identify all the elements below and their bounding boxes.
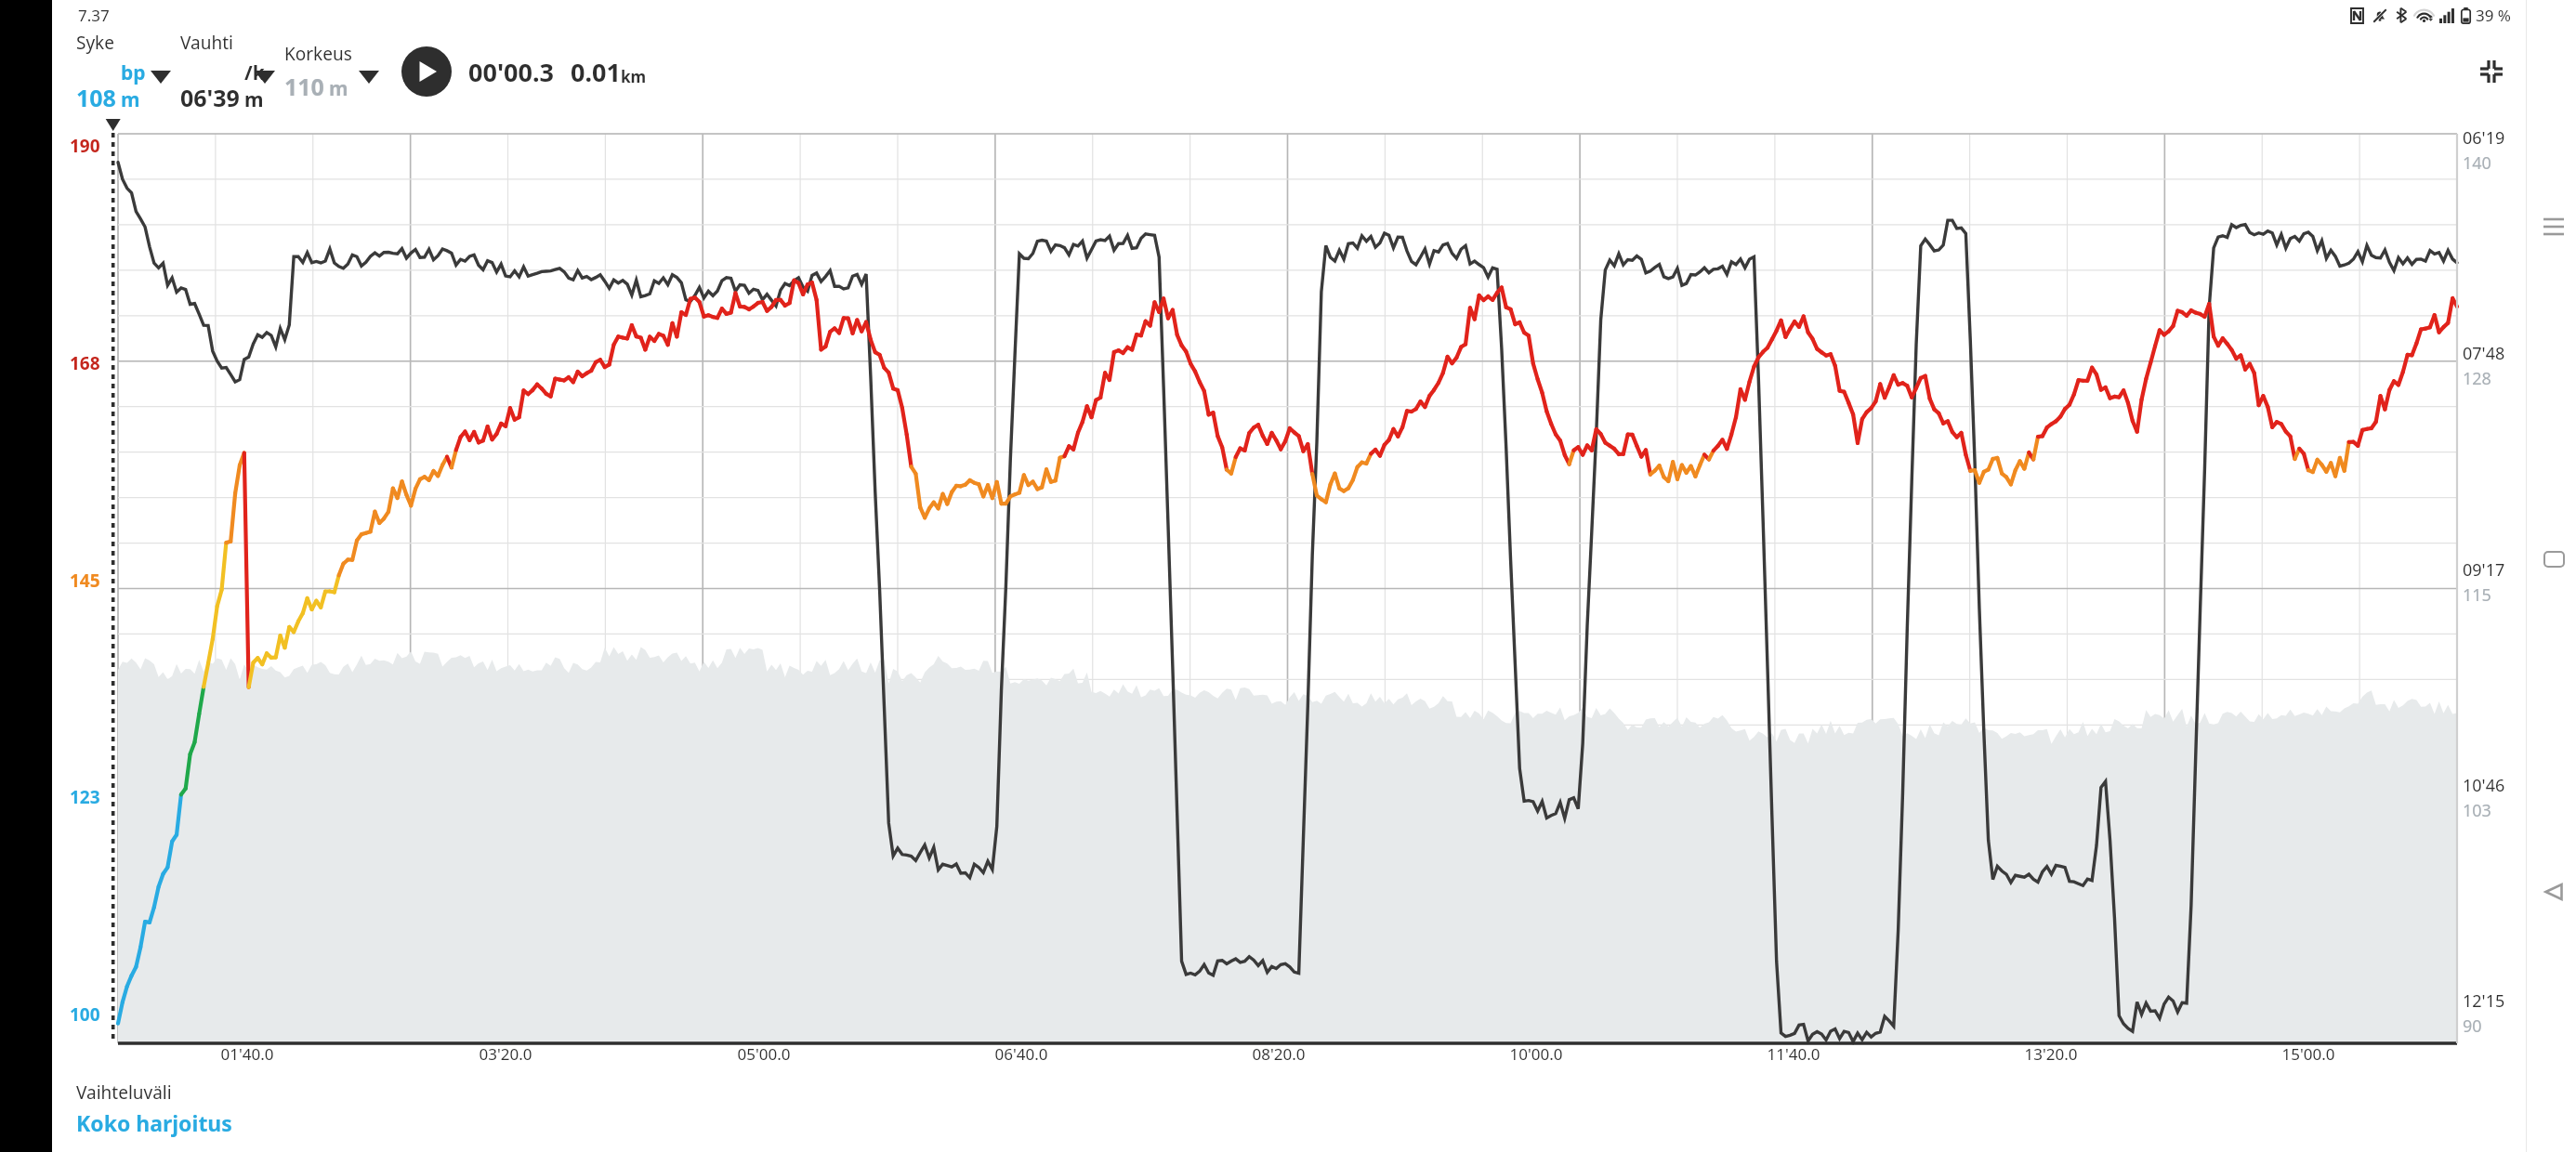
staticText: 12'15	[2463, 989, 2505, 1013]
staticText: 15'00.0	[2281, 1043, 2335, 1065]
button[interactable]: Syke	[76, 31, 180, 113]
staticText: 07'48	[2463, 342, 2505, 365]
staticText: 108	[76, 82, 116, 113]
staticText: bpm	[121, 59, 151, 113]
staticText: 168	[70, 351, 100, 375]
staticText: 08'20.0	[1252, 1043, 1306, 1065]
staticText: 128	[2463, 367, 2491, 390]
staticText: 03'20.0	[479, 1043, 532, 1065]
staticText: Syke	[76, 31, 114, 55]
staticText: 115	[2463, 583, 2491, 607]
button[interactable]: Exit fullscreen	[2470, 50, 2513, 93]
staticText: m	[329, 75, 348, 102]
staticText: 110	[284, 71, 324, 102]
staticText: Koko harjoitus	[76, 1108, 232, 1137]
button[interactable]: Back	[2535, 873, 2572, 910]
button[interactable]: Recents	[2535, 208, 2572, 245]
button[interactable]: Play	[401, 46, 452, 97]
staticText: 123	[70, 785, 100, 809]
staticText: 05'00.0	[737, 1043, 791, 1065]
button[interactable]: Korkeus	[284, 42, 388, 102]
staticText: 06'19	[2463, 126, 2505, 150]
staticText: /km	[244, 59, 255, 113]
staticText: km	[621, 66, 647, 87]
staticText: 0.01	[571, 55, 621, 89]
staticText: 01'40.0	[220, 1043, 274, 1065]
staticText: 11'40.0	[1767, 1043, 1820, 1065]
staticText: 13'20.0	[2024, 1043, 2078, 1065]
staticText: 39 %	[2476, 5, 2511, 26]
staticText: 00'00.3	[468, 55, 554, 89]
button[interactable]: Home	[2535, 541, 2572, 578]
staticText: 06'40.0	[994, 1043, 1048, 1065]
staticText: Vauhti	[180, 31, 233, 55]
staticText: 90	[2463, 1015, 2482, 1038]
staticText: 06'39	[180, 82, 240, 113]
staticText: 09'17	[2463, 558, 2505, 582]
staticText: 10'00.0	[1509, 1043, 1563, 1065]
staticText: 103	[2463, 799, 2491, 822]
staticText: 10'46	[2463, 774, 2505, 797]
button[interactable]: Vauhti	[180, 31, 284, 113]
staticText: 190	[70, 134, 100, 158]
staticText: Vaihteluväli	[76, 1080, 172, 1105]
staticText: 100	[70, 1002, 100, 1027]
staticText: Korkeus	[284, 42, 352, 66]
staticText: 145	[70, 569, 100, 593]
staticText: 140	[2463, 151, 2491, 175]
staticText: 7.37	[78, 5, 110, 26]
button[interactable]: Vaihteluväli	[76, 1080, 2526, 1137]
